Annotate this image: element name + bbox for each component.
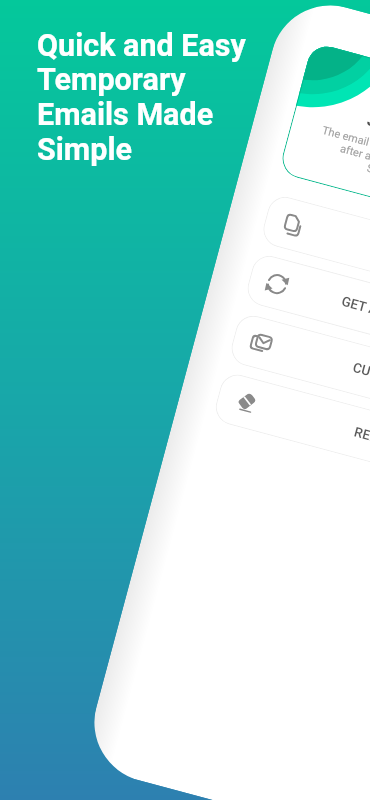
button[interactable]: Get a new address [243, 252, 370, 380]
staticText: Just a moment, please wait [365, 110, 370, 180]
staticText: after a few seconds, please wait [339, 142, 370, 195]
button[interactable]: Refresh [212, 371, 370, 499]
staticText: GET A NEW ADDRESS [340, 293, 370, 342]
staticText: REFRESH [352, 423, 370, 454]
staticText: The email address will be generated [321, 124, 370, 182]
button[interactable]: Custom email [227, 312, 370, 440]
staticText: Seconds remaining [365, 162, 370, 199]
button[interactable]: Copy email [259, 193, 370, 321]
staticText: Quick and Easy Temporary Emails Made Sim… [37, 28, 246, 168]
staticText: CUSTOM EMAIL [351, 359, 370, 400]
